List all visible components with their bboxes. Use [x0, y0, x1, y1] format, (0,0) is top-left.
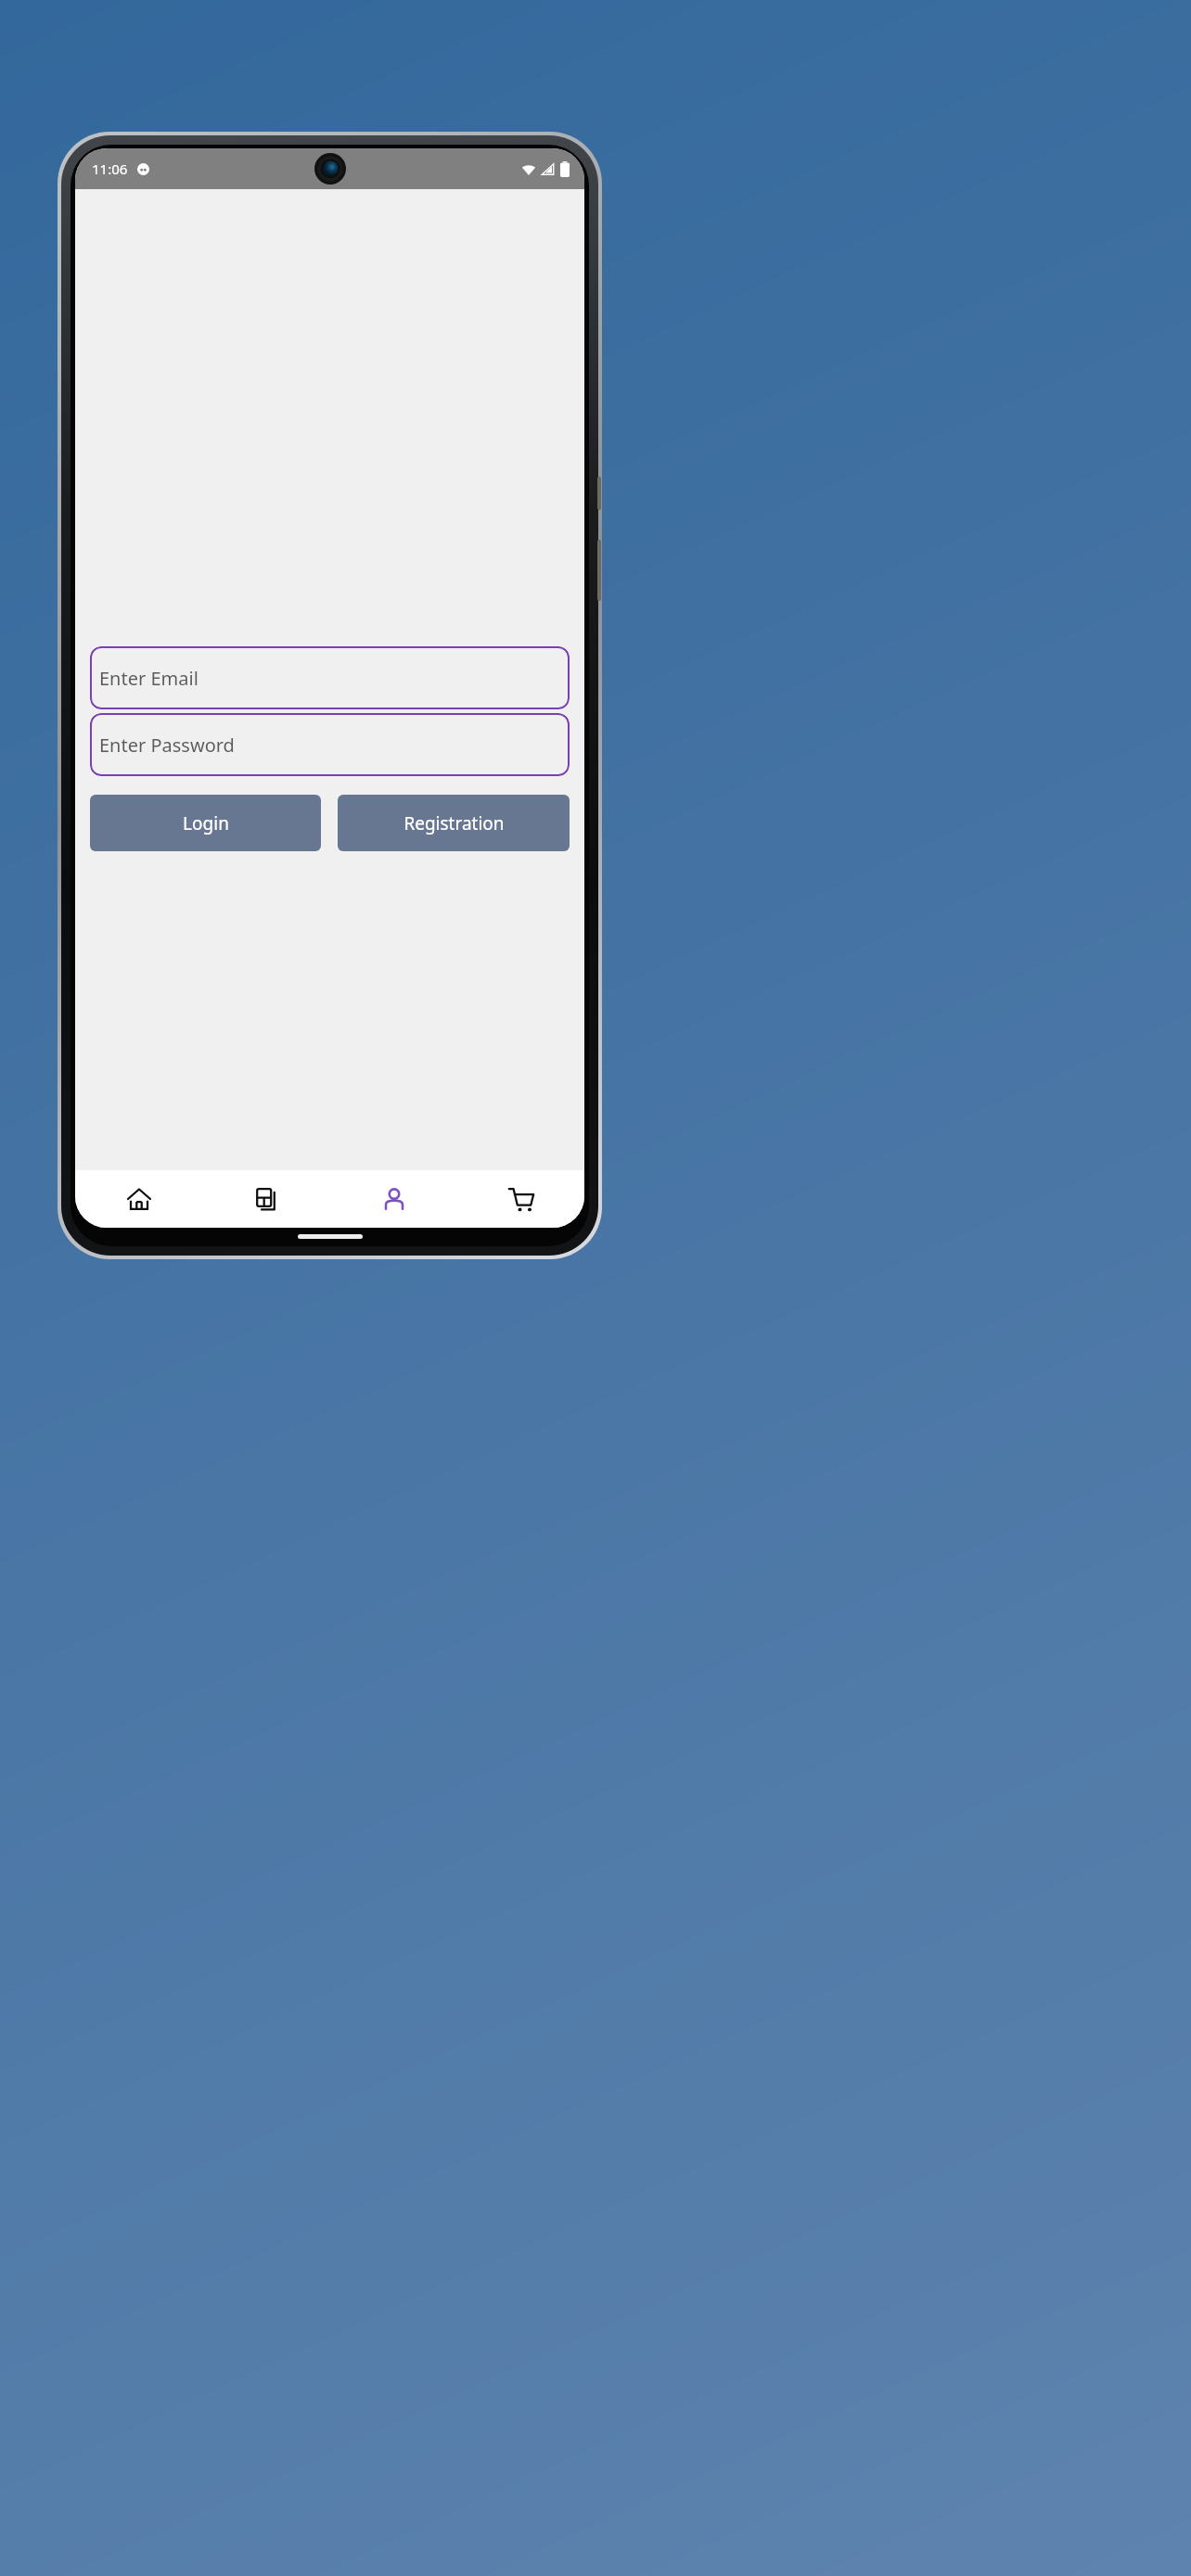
staticText: Registration	[403, 811, 505, 835]
button[interactable]: Profile	[330, 1170, 457, 1228]
button[interactable]: Catalog	[203, 1170, 330, 1228]
button[interactable]: Enter Email	[90, 646, 570, 709]
button[interactable]: Enter Password	[90, 713, 570, 776]
button[interactable]: Login	[90, 795, 321, 851]
staticText: Login	[183, 811, 229, 835]
staticText: Enter Email	[99, 666, 198, 691]
button[interactable]: Cart	[457, 1170, 584, 1228]
staticText: Enter Password	[99, 733, 235, 758]
staticText: 11:06	[92, 159, 128, 178]
button[interactable]: Home	[75, 1170, 203, 1228]
button[interactable]: Registration	[338, 795, 570, 851]
